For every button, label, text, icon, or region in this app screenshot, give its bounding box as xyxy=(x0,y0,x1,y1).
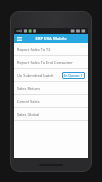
button[interactable]: Sales Return xyxy=(14,82,88,94)
staticText: Sales Global xyxy=(17,112,40,117)
button[interactable]: In Queue: 1 xyxy=(62,72,85,79)
staticText: Cancel Sales xyxy=(17,99,40,104)
staticText: Report Sales To End Consumer xyxy=(17,60,73,65)
button[interactable]: Cancel Sales xyxy=(14,95,88,107)
staticText: In Queue: 1 xyxy=(64,73,83,78)
staticText: Report Sales To T2 xyxy=(17,47,51,52)
button[interactable]: Report Sales To T2 xyxy=(14,43,88,55)
staticText: Sales Return xyxy=(17,86,40,91)
staticText: ERP ERA Mobile xyxy=(35,36,67,42)
button[interactable]: Open navigation drawer xyxy=(16,36,23,42)
staticText: Un Submitted batch xyxy=(17,73,54,78)
button[interactable]: Un Submitted batch xyxy=(14,69,88,81)
button[interactable]: Report Sales To End Consumer xyxy=(14,56,88,68)
button[interactable]: Sales Global xyxy=(14,108,88,120)
